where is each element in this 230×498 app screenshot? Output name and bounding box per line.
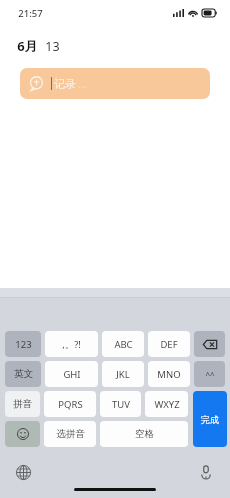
button[interactable]: 123 bbox=[5, 331, 41, 357]
button[interactable]: 空格 bbox=[100, 421, 188, 447]
button[interactable]: ^^ bbox=[194, 361, 225, 387]
button[interactable]: 选拼音 bbox=[44, 421, 96, 447]
staticText: JKL bbox=[116, 368, 130, 381]
staticText: PQRS bbox=[58, 398, 83, 411]
button[interactable]: 拼音 bbox=[5, 391, 40, 417]
staticText: 123 bbox=[15, 338, 32, 351]
staticText: TUV bbox=[112, 398, 130, 411]
button[interactable]: 完成 bbox=[193, 391, 227, 447]
staticText: 13 bbox=[45, 38, 60, 55]
button[interactable]: Backspace bbox=[194, 331, 225, 357]
staticText: 拼音 bbox=[13, 398, 32, 410]
button[interactable]: Voice input bbox=[196, 462, 216, 482]
button[interactable]: MNO bbox=[148, 361, 190, 387]
button[interactable]: Emoji bbox=[5, 421, 40, 447]
staticText: WXYZ bbox=[154, 398, 180, 411]
button[interactable]: 英文 bbox=[5, 361, 41, 387]
staticText: ,。?! bbox=[62, 338, 81, 351]
staticText: 完成 bbox=[201, 414, 219, 425]
staticText: ABC bbox=[114, 338, 133, 351]
staticText: 21:57 bbox=[18, 7, 43, 20]
staticText: 记录 bbox=[54, 77, 76, 91]
staticText: DEF bbox=[160, 338, 178, 351]
staticText: GHI bbox=[63, 368, 81, 381]
button[interactable]: Voice note bbox=[20, 68, 210, 99]
staticText: 选拼音 bbox=[56, 428, 85, 440]
button[interactable]: TUV bbox=[100, 391, 141, 417]
staticText: … bbox=[78, 76, 87, 91]
button[interactable]: DEF bbox=[148, 331, 190, 357]
button[interactable]: ,。?! bbox=[45, 331, 98, 357]
button[interactable]: JKL bbox=[102, 361, 144, 387]
staticText: 英文 bbox=[14, 368, 33, 380]
staticText: 6月 bbox=[17, 37, 38, 55]
staticText: MNO bbox=[157, 368, 181, 381]
button[interactable]: GHI bbox=[45, 361, 98, 387]
button[interactable]: PQRS bbox=[44, 391, 96, 417]
button[interactable]: Switch keyboard bbox=[13, 462, 33, 482]
other: Voice note bbox=[29, 76, 44, 91]
button[interactable]: WXYZ bbox=[145, 391, 188, 417]
staticText: 空格 bbox=[135, 428, 154, 440]
staticText: ^^ bbox=[205, 369, 215, 380]
button[interactable]: ABC bbox=[102, 331, 144, 357]
